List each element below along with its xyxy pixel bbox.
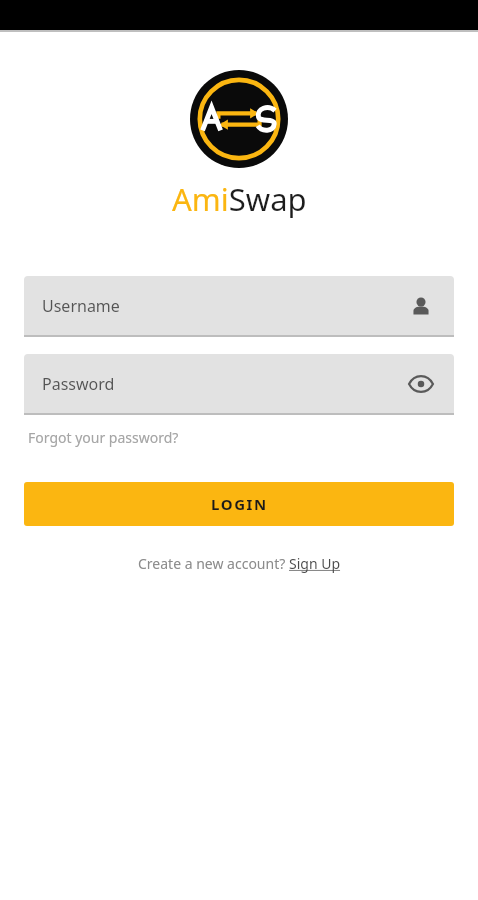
button[interactable]: Password (24, 354, 454, 415)
button[interactable]: Forgot your password? (28, 426, 179, 449)
staticText: Sign Up (289, 554, 341, 573)
staticText: Password (42, 373, 115, 395)
button[interactable]: LOGIN (24, 482, 454, 526)
staticText: LOGIN (211, 494, 268, 514)
button[interactable]: Username (408, 293, 434, 319)
staticText: Forgot your password? (28, 428, 179, 447)
button[interactable]: Username (24, 276, 454, 337)
staticText: Username (42, 295, 120, 317)
button[interactable]: Show password (408, 371, 434, 397)
button[interactable]: Create a new account? (132, 552, 347, 575)
staticText: AmiSwap (172, 178, 307, 220)
staticText: Create a new account? (138, 554, 289, 573)
